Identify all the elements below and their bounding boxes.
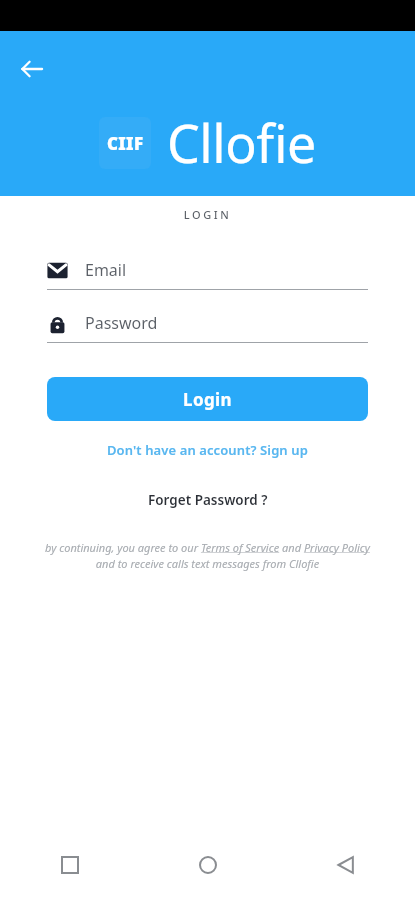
staticText: LOGIN — [0, 207, 415, 222]
button[interactable]: Email — [47, 255, 368, 285]
staticText: Password — [85, 312, 158, 334]
staticText: by continuing, you agree to our Terms of… — [40, 540, 375, 571]
staticText: Cllofie — [167, 107, 316, 178]
staticText: Email — [85, 259, 127, 281]
staticText: Login — [183, 388, 233, 411]
button[interactable]: Forget Password ? — [0, 487, 415, 513]
button[interactable]: Recents — [0, 830, 139, 900]
button[interactable]: Home — [139, 830, 277, 900]
button[interactable]: Don't have an account? Sign up — [0, 435, 415, 465]
button[interactable]: Back — [8, 45, 56, 93]
staticText: Forget Password ? — [148, 491, 268, 509]
button[interactable]: Password — [47, 308, 368, 338]
button[interactable]: Back — [277, 830, 415, 900]
staticText: CIIF — [107, 132, 144, 155]
button[interactable]: Login — [47, 377, 368, 421]
staticText: Don't have an account? Sign up — [107, 441, 308, 459]
